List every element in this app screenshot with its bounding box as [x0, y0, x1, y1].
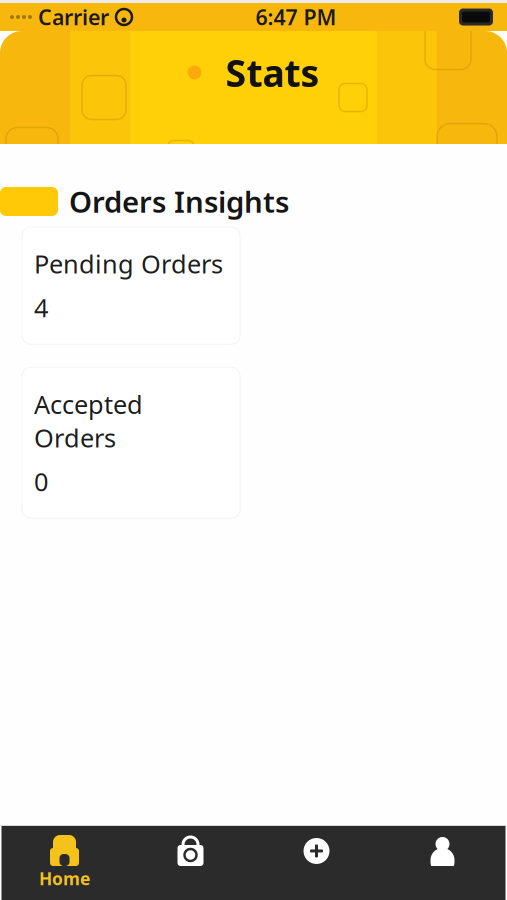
staticText: Orders Insights [69, 182, 289, 221]
staticText: 0 [34, 464, 48, 498]
staticText: 6:47 PM [255, 3, 336, 31]
button[interactable]: Pending Orders [22, 227, 240, 344]
button[interactable]: Profile [379, 826, 505, 900]
staticText: Pending Orders [34, 247, 223, 281]
staticText: Accepted Orders [34, 387, 143, 454]
staticText: Carrier [38, 3, 109, 31]
staticText: Home [39, 867, 90, 890]
button[interactable]: Add [253, 826, 379, 900]
staticText: 4 [34, 291, 48, 324]
staticText: Stats [225, 48, 319, 97]
button[interactable]: Home [1, 826, 127, 900]
button[interactable]: In Delivery Orders [22, 715, 240, 866]
button[interactable]: Orders [127, 826, 253, 900]
button[interactable]: Accepted Orders [22, 367, 240, 518]
staticText: 0 [34, 812, 48, 846]
